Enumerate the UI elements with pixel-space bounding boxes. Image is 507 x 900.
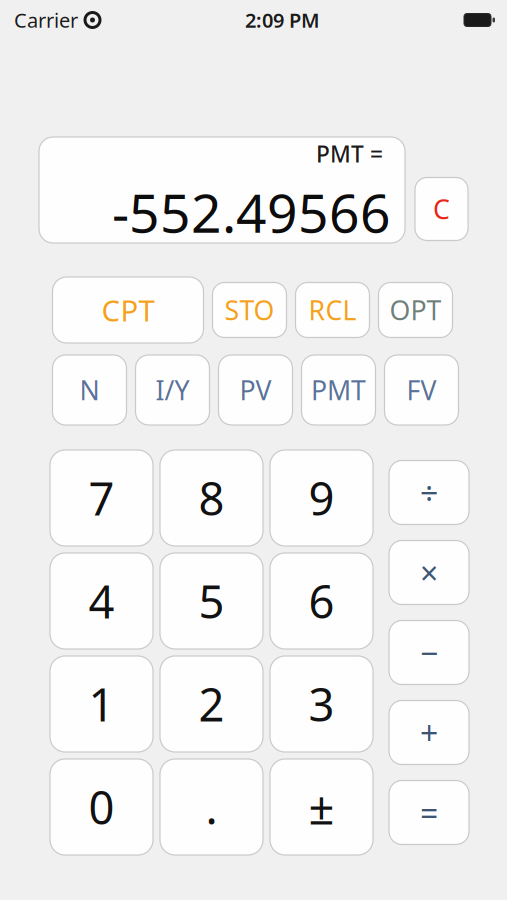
button[interactable]: PMT	[301, 355, 375, 425]
button[interactable]: −	[389, 620, 469, 684]
staticText: I/Y	[155, 372, 189, 408]
button[interactable]: .	[160, 759, 263, 855]
staticText: 2	[198, 674, 224, 734]
staticText: 0	[88, 777, 114, 837]
staticText: .	[205, 777, 217, 837]
staticText: ×	[420, 551, 438, 594]
button[interactable]: STO	[212, 282, 286, 337]
staticText: =	[420, 791, 438, 834]
staticText: PV	[239, 372, 271, 408]
staticText: N	[79, 372, 99, 408]
button[interactable]: 2	[160, 656, 263, 752]
staticText: 3	[308, 674, 334, 734]
button[interactable]: =	[389, 780, 469, 844]
staticText: 6	[308, 571, 334, 631]
staticText: OPT	[389, 292, 441, 328]
staticText: 5	[198, 571, 224, 631]
staticText: 4	[88, 571, 114, 631]
staticText: −	[420, 631, 438, 674]
button[interactable]: 1	[50, 656, 153, 752]
staticText: FV	[406, 372, 436, 408]
button[interactable]: C	[415, 177, 468, 240]
staticText: +	[420, 711, 438, 754]
staticText: PMT =	[316, 138, 383, 169]
button[interactable]: FV	[384, 355, 458, 425]
button[interactable]: ÷	[389, 460, 469, 524]
button[interactable]: 3	[270, 656, 373, 752]
button[interactable]: CPT	[52, 277, 203, 343]
staticText: 8	[198, 468, 224, 528]
button[interactable]: 8	[160, 450, 263, 546]
staticText: 1	[88, 674, 114, 734]
button[interactable]: 4	[50, 553, 153, 649]
staticText: ±	[308, 777, 334, 837]
staticText: RCL	[308, 292, 356, 328]
staticText: CPT	[101, 290, 154, 329]
staticText: ÷	[420, 471, 438, 514]
button[interactable]: ±	[270, 759, 373, 855]
staticText: 2:09 PM	[245, 7, 320, 33]
staticText: -552.49566	[112, 177, 391, 247]
staticText: 9	[308, 468, 334, 528]
button[interactable]: ×	[389, 540, 469, 604]
staticText: STO	[224, 292, 274, 328]
button[interactable]: PV	[218, 355, 292, 425]
button[interactable]: N	[52, 355, 126, 425]
button[interactable]: OPT	[378, 282, 452, 337]
staticText: C	[433, 191, 450, 227]
button[interactable]: 7	[50, 450, 153, 546]
button[interactable]: 0	[50, 759, 153, 855]
button[interactable]: I/Y	[135, 355, 209, 425]
staticText: 7	[88, 468, 114, 528]
button[interactable]: +	[389, 700, 469, 764]
button[interactable]: 6	[270, 553, 373, 649]
button[interactable]: RCL	[295, 282, 369, 337]
staticText: PMT	[311, 372, 366, 408]
staticText: Carrier	[14, 7, 78, 33]
button[interactable]: 5	[160, 553, 263, 649]
button[interactable]: 9	[270, 450, 373, 546]
